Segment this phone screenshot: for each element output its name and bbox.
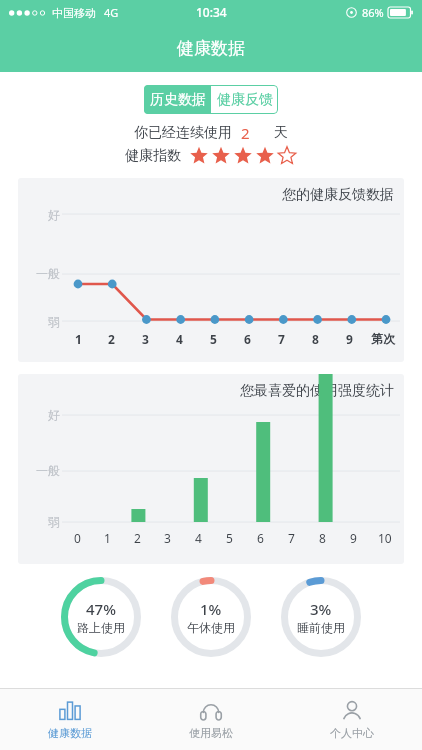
staticText: 3	[142, 331, 149, 347]
staticText: 健康数据	[177, 38, 245, 59]
staticText: 5	[210, 331, 217, 347]
staticText: 6	[257, 530, 264, 546]
staticText: 中国移动	[52, 6, 96, 20]
other: 个人中心	[340, 699, 364, 723]
staticText: 8	[312, 331, 319, 347]
staticText: 10	[378, 530, 392, 546]
staticText: 1%	[200, 599, 222, 619]
staticText: 4	[195, 530, 202, 546]
staticText: 午休使用	[187, 620, 235, 635]
staticText: 历史数据	[150, 91, 206, 109]
staticText: 2	[134, 530, 141, 546]
staticText: 好	[48, 207, 60, 222]
staticText: 86%	[362, 5, 384, 20]
staticText: 7	[278, 331, 285, 347]
staticText: 9	[346, 331, 353, 347]
staticText: 你已经连续使用	[134, 124, 232, 142]
staticText: 一般	[36, 463, 60, 478]
staticText: 使用易松	[189, 726, 233, 740]
staticText: 7	[288, 530, 295, 546]
staticText: 个人中心	[330, 726, 374, 740]
staticText: 2	[108, 331, 115, 347]
staticText: 健康数据	[48, 726, 92, 740]
button[interactable]: 47%	[60, 576, 142, 658]
other: 健康数据	[58, 699, 82, 723]
staticText: 您的健康反馈数据	[282, 186, 394, 204]
staticText: 弱	[48, 514, 60, 529]
staticText: 路上使用	[77, 620, 125, 635]
other: 使用易松	[199, 699, 223, 723]
button[interactable]: 3%	[280, 576, 362, 658]
button[interactable]: 个人中心	[281, 689, 422, 750]
staticText: 5	[226, 530, 233, 546]
staticText: 4G	[104, 5, 119, 20]
staticText: 6	[244, 331, 251, 347]
staticText: 1	[104, 530, 111, 546]
staticText: 一般	[36, 266, 60, 281]
staticText: 健康反馈	[217, 91, 273, 109]
staticText: 第次	[371, 331, 395, 346]
button[interactable]: 健康反馈	[211, 85, 278, 114]
staticText: 1	[75, 331, 82, 347]
button[interactable]: 使用易松	[140, 689, 281, 750]
staticText: 10:34	[196, 4, 227, 20]
staticText: 您最喜爱的使用强度统计	[240, 382, 394, 400]
staticText: 睡前使用	[297, 620, 345, 635]
staticText: 健康指数	[125, 147, 181, 165]
staticText: 9	[350, 530, 357, 546]
staticText: 47%	[86, 599, 116, 619]
button[interactable]: 健康数据	[0, 689, 140, 750]
staticText: 3%	[310, 599, 332, 619]
staticText: 好	[48, 407, 60, 422]
staticText: 2	[241, 123, 250, 143]
staticText: 0	[74, 530, 81, 546]
staticText: 天	[274, 124, 288, 142]
button[interactable]: 1%	[170, 576, 252, 658]
button[interactable]: 历史数据	[144, 85, 211, 114]
staticText: 弱	[48, 314, 60, 329]
staticText: 4	[176, 331, 183, 347]
staticText: 8	[319, 530, 326, 546]
staticText: 3	[164, 530, 171, 546]
